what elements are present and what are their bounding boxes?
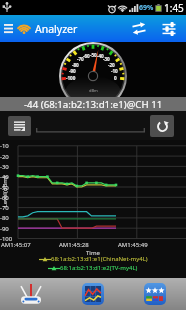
staticText: -40 [97,53,104,59]
staticText: 68:1a:b2:13:d1:e2(TV-my4L) [60,264,138,272]
staticText: -40 [0,173,9,181]
staticText: 69% [139,3,154,13]
staticText: Time [86,249,100,257]
staticText: AM1:45:28 [59,241,89,249]
button[interactable]: Select access point [8,116,31,136]
staticText: -60 [83,53,90,59]
staticText: -50 [90,52,97,58]
staticText: -50 [0,184,9,192]
staticText: -100 [66,75,76,81]
staticText: dBm [89,88,98,93]
staticText: -80 [72,62,79,68]
staticText: AM1:45:49 [118,241,148,249]
staticText: -90 [0,225,9,233]
staticText: -20 [0,153,9,161]
staticText: -60 [0,194,9,202]
staticText: -30 [0,163,9,171]
staticText: Analyzer [35,22,78,36]
staticText: -80 [0,214,9,222]
button[interactable]: Channel rating [124,278,186,310]
staticText: -70 [77,56,84,62]
staticText: 68:1a:b2:13:d1:e1(ChinaNet-my4L) [51,255,148,263]
staticText: 0 [114,75,117,81]
button[interactable]: Switch band [124,15,154,42]
staticText: -10 [0,142,9,150]
staticText: -70 [0,204,9,212]
staticText: -90 [69,68,76,74]
staticText: -10 [111,68,118,74]
staticText: -100 [0,235,13,243]
staticText: Level(dBm) [0,175,8,207]
button[interactable]: Refresh [150,115,174,137]
button[interactable]: Navigation drawer [0,15,16,42]
staticText: -44 (68:1a:b2:13:d1:e1)@CH 11 [24,98,163,111]
staticText: -30 [103,56,110,62]
button[interactable]: Access points [0,278,62,310]
staticText: AM1:45:07 [1,241,31,249]
button[interactable]: Settings [154,15,184,42]
staticText: 1:45 [164,1,184,15]
button[interactable]: Signal time graph [62,278,124,310]
staticText: -20 [108,62,115,68]
